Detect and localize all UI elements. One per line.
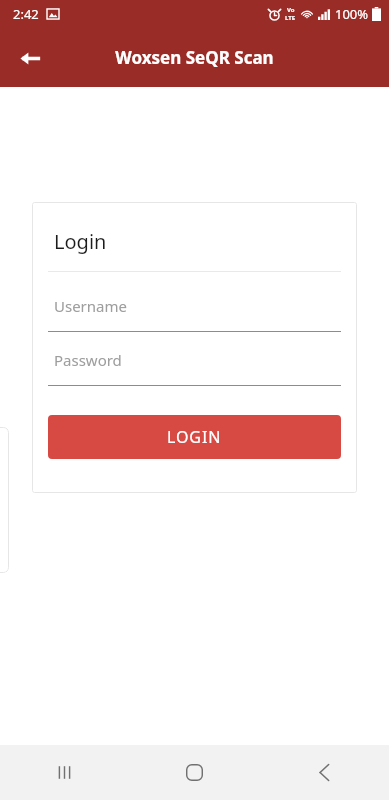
staticText: Password [54,350,122,370]
button[interactable]: Recent apps [0,745,129,800]
staticText: 100% [335,5,369,23]
staticText: Vo [287,6,295,14]
staticText: Login [54,228,107,255]
staticText: 2:42 [13,5,39,23]
button[interactable]: LOGIN [48,415,341,459]
button[interactable]: Back [11,39,49,77]
button[interactable]: Home [129,745,259,800]
staticText: LTE [285,14,296,22]
button[interactable]: Back [259,745,389,800]
staticText: Username [54,296,127,316]
staticText: Woxsen SeQR Scan [115,46,274,69]
staticText: LOGIN [167,426,222,448]
